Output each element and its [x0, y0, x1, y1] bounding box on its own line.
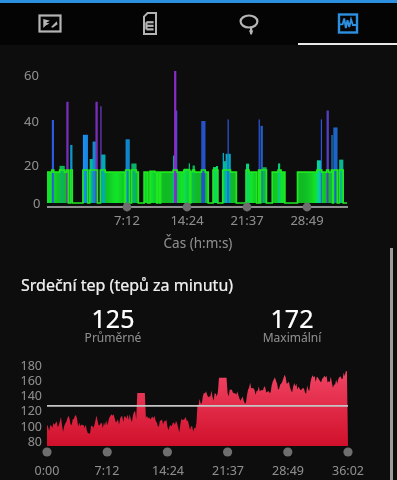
staticText: 14:24: [117, 211, 257, 229]
button[interactable]: Charts: [298, 3, 397, 43]
staticText: 21:37: [177, 211, 317, 229]
staticText: 160: [0, 372, 42, 389]
staticText: 21:37: [158, 462, 298, 479]
staticText: Srdeční tep (tepů za minutu): [21, 274, 234, 296]
staticText: Maximální: [222, 329, 362, 345]
staticText: 14:24: [98, 462, 238, 479]
staticText: 172: [222, 301, 362, 335]
staticText: 80: [0, 433, 42, 450]
staticText: 20: [24, 156, 39, 174]
staticText: 0:00: [0, 462, 117, 479]
staticText: 60: [24, 66, 39, 84]
button[interactable]: Map: [0, 3, 100, 43]
staticText: 100: [0, 418, 42, 435]
button[interactable]: Laps: [199, 3, 298, 43]
staticText: 7:12: [57, 211, 197, 229]
staticText: 0: [33, 194, 41, 212]
staticText: Čas (h:m:s): [128, 234, 268, 252]
staticText: 125: [43, 301, 183, 335]
staticText: 7:12: [37, 462, 177, 479]
staticText: 36:02: [278, 462, 397, 479]
button[interactable]: Details: [100, 3, 199, 43]
staticText: 40: [24, 112, 39, 130]
staticText: 28:49: [237, 211, 377, 229]
staticText: 120: [0, 402, 42, 419]
staticText: Průměrné: [43, 329, 183, 345]
staticText: 140: [0, 387, 42, 404]
staticText: 180: [0, 357, 42, 374]
staticText: 28:49: [218, 462, 358, 479]
